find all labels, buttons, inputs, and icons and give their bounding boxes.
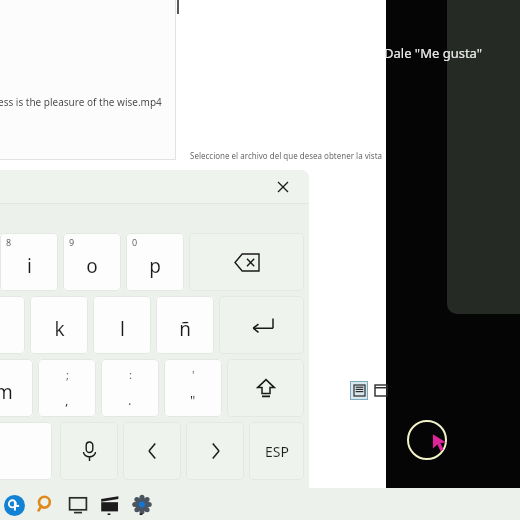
staticText: . — [128, 391, 132, 409]
button[interactable]: Key — [189, 233, 304, 291]
other: Cursor — [432, 434, 450, 452]
staticText: l — [120, 316, 125, 342]
staticText: 9 — [69, 236, 75, 248]
button[interactable]: 8 — [0, 233, 58, 291]
staticText: p — [149, 253, 161, 279]
button[interactable] — [0, 422, 52, 480]
staticText: m — [0, 379, 13, 405]
staticText: o — [86, 253, 98, 279]
staticText: k — [54, 316, 65, 342]
staticText: " — [190, 391, 196, 409]
button[interactable]: Key — [249, 422, 304, 480]
button[interactable]: 7 — [0, 233, 25, 291]
button[interactable]: m — [0, 359, 33, 417]
button[interactable]: ' — [164, 359, 222, 417]
staticText: 0 — [132, 236, 138, 248]
staticText: , — [65, 391, 69, 409]
staticText: ESP — [265, 442, 289, 461]
staticText: Dale "Me gusta" — [384, 44, 483, 62]
button[interactable]: Close keyboard — [270, 174, 296, 200]
staticText: ' — [192, 367, 195, 382]
button[interactable]: Video editor — [98, 493, 122, 517]
button[interactable]: 9 — [63, 233, 121, 291]
staticText: 8 — [6, 236, 12, 248]
button[interactable]: j — [0, 296, 25, 354]
button[interactable]: Details view — [350, 381, 368, 400]
button[interactable]: Key — [123, 422, 181, 480]
button[interactable]: l — [93, 296, 151, 354]
staticText: Seleccione el archivo del que desea obte… — [190, 150, 383, 161]
button[interactable]: App — [2, 493, 26, 517]
button[interactable]: k — [30, 296, 88, 354]
button[interactable]: 0 — [126, 233, 184, 291]
button[interactable]: Desktop — [66, 493, 90, 517]
staticText: ñ — [179, 316, 191, 342]
button[interactable]: Key — [186, 422, 244, 480]
staticText: u — [0, 253, 2, 279]
button[interactable]: ñ — [156, 296, 214, 354]
button[interactable]: Key — [227, 359, 304, 417]
button[interactable]: Key — [60, 422, 118, 480]
staticText: ess is the pleasure of the wise.mp4 — [0, 95, 162, 109]
staticText: i — [27, 253, 32, 279]
button[interactable]: : — [101, 359, 159, 417]
button[interactable]: Key — [219, 296, 304, 354]
button[interactable]: Settings — [130, 493, 154, 517]
button[interactable]: Search — [34, 493, 58, 517]
staticText: ; — [66, 367, 69, 382]
staticText: : — [129, 367, 132, 382]
button[interactable]: Preview pane — [372, 381, 390, 400]
button[interactable]: ; — [38, 359, 96, 417]
